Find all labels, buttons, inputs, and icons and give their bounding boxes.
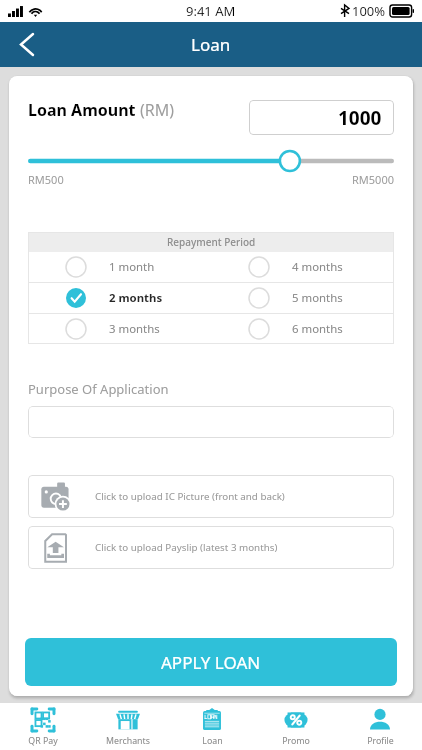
staticText: 5 months [292,290,343,306]
staticText: Repayment Period [167,235,256,249]
staticText: 2 months [109,290,163,306]
staticText: Promo [282,735,310,747]
button[interactable]: 5 months [211,283,394,313]
staticText: (RM) [140,99,175,121]
button[interactable]: 3 months [28,314,211,344]
button[interactable] [28,406,394,438]
staticText: Loan Amount [28,99,140,121]
staticText: 4 months [292,259,343,275]
staticText: Click to upload IC Picture (front and ba… [95,490,285,503]
button[interactable]: 1000 [249,100,394,135]
staticText: 1 month [109,259,155,275]
button[interactable]: 4 months [211,252,394,282]
staticText: APPLY LOAN [161,651,261,674]
staticText: Merchants [106,735,150,747]
button[interactable]: Merchants [85,703,170,750]
button[interactable]: Loan [170,703,254,750]
staticText: Purpose Of Application [28,380,169,398]
staticText: 1000 [338,105,382,131]
staticText: RM500 [28,172,64,187]
staticText: QR Pay [28,735,58,747]
button[interactable]: QR Pay [0,703,85,750]
button[interactable]: Click to upload IC Picture (front and ba… [28,475,394,518]
button[interactable]: Promo [254,703,338,750]
staticText: Click to upload Payslip (latest 3 months… [95,541,278,554]
staticText: Profile [367,735,394,747]
staticText: 3 months [109,321,160,337]
button[interactable] [28,149,394,173]
button[interactable]: Click to upload Payslip (latest 3 months… [28,526,394,569]
button[interactable]: 2 months [28,283,211,313]
button[interactable]: APPLY LOAN [25,638,397,686]
staticText: Loan [202,735,223,747]
staticText: 9:41 AM [186,2,236,20]
staticText: 100% [352,2,386,20]
button[interactable]: Profile [338,703,422,750]
staticText: 6 months [292,321,343,337]
button[interactable]: 1 month [28,252,211,282]
staticText: Loan [191,33,231,56]
button[interactable]: 6 months [211,314,394,344]
staticText: RM5000 [352,172,394,187]
button[interactable]: Back [0,22,45,67]
